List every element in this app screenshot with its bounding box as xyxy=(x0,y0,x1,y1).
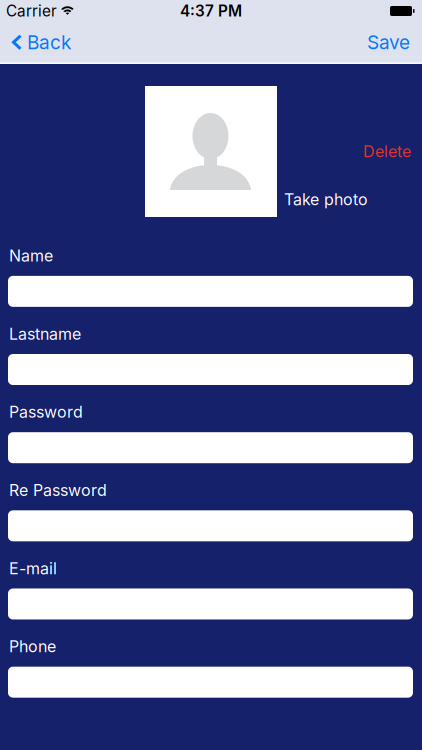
staticText: Take photo xyxy=(284,190,368,209)
staticText: Back xyxy=(27,31,71,54)
button[interactable]: Delete xyxy=(363,142,411,161)
staticText: Password xyxy=(9,402,83,422)
button[interactable]: Save xyxy=(367,31,422,54)
staticText: Re Password xyxy=(9,480,107,500)
staticText: Delete xyxy=(363,142,411,161)
staticText: Carrier xyxy=(6,2,57,20)
staticText: Phone xyxy=(9,637,56,656)
button[interactable]: Back xyxy=(0,31,71,54)
staticText: Save xyxy=(367,31,410,54)
staticText: Lastname xyxy=(9,324,81,344)
button[interactable]: Take photo xyxy=(284,190,368,209)
staticText: E-mail xyxy=(9,559,57,578)
staticText: Name xyxy=(9,246,53,265)
staticText: 4:37 PM xyxy=(180,2,242,20)
